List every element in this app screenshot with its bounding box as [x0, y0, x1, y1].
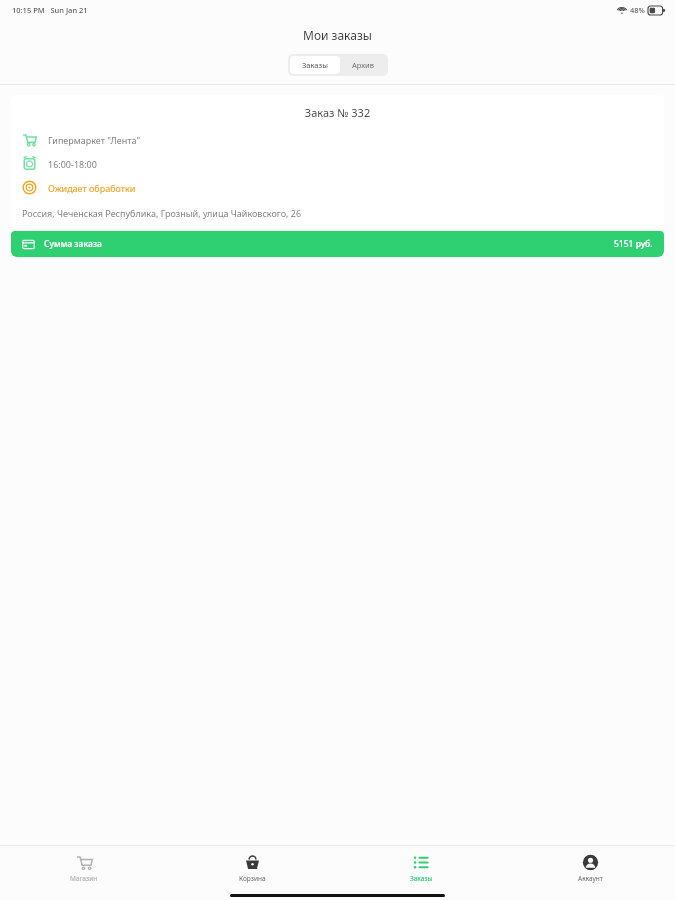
- staticText: Заказ № 332: [11, 105, 664, 120]
- button[interactable]: Заказы: [337, 854, 506, 883]
- button[interactable]: Магазин: [0, 854, 168, 883]
- staticText: Ожидает обработки: [48, 182, 136, 194]
- staticText: Аккаунт: [578, 874, 603, 883]
- button[interactable]: Корзина: [168, 854, 337, 883]
- button[interactable]: Архив: [340, 56, 386, 74]
- staticText: 48%: [630, 5, 645, 15]
- staticText: 10:15 PM Sun Jan 21: [12, 5, 88, 15]
- staticText: Заказы: [302, 60, 328, 70]
- staticText: Сумма заказа: [44, 238, 102, 250]
- button[interactable]: Аккаунт: [506, 854, 675, 883]
- staticText: Корзина: [239, 874, 266, 883]
- staticText: Архив: [352, 60, 374, 70]
- staticText: 5151 руб.: [614, 238, 653, 250]
- staticText: Гипермаркет "Лента": [48, 134, 141, 146]
- button[interactable]: Сумма заказа: [11, 231, 664, 257]
- staticText: Заказы: [410, 874, 433, 883]
- staticText: Магазин: [70, 874, 98, 883]
- staticText: 16:00-18:00: [48, 158, 97, 170]
- button[interactable]: Заказы: [290, 56, 340, 74]
- staticText: Россия, Чеченская Республика, Грозный, у…: [22, 207, 302, 219]
- staticText: Мои заказы: [303, 27, 372, 43]
- button[interactable]: Заказ № 332: [11, 95, 664, 257]
